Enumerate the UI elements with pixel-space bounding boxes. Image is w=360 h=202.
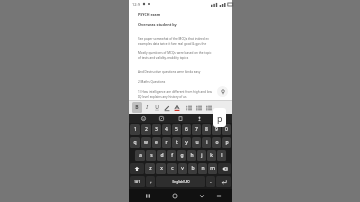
button[interactable]: 5: [172, 124, 181, 135]
staticText: Mostly questions of MCQs were based on t…: [138, 51, 225, 55]
button[interactable]: i: [202, 137, 211, 148]
button[interactable]: Recents: [142, 189, 154, 202]
staticText: c: [171, 165, 174, 172]
staticText: d: [160, 152, 164, 159]
staticText: of tests and validity-reability topics: [138, 56, 225, 60]
staticText: p: [225, 139, 229, 146]
button[interactable]: ,: [146, 176, 155, 187]
button[interactable]: 6: [182, 124, 191, 135]
button[interactable]: Backspace: [218, 163, 231, 174]
button[interactable]: 0: [222, 124, 231, 135]
staticText: 9: [215, 126, 218, 133]
button[interactable]: Back: [196, 189, 208, 202]
button[interactable]: Enter: [216, 176, 231, 187]
staticText: .: [210, 178, 212, 185]
staticText: z: [149, 165, 152, 172]
button[interactable]: Highlight: [162, 102, 172, 113]
staticText: b: [191, 165, 195, 172]
button[interactable]: B: [132, 102, 142, 113]
staticText: j: [201, 152, 203, 159]
button[interactable]: 3: [152, 124, 161, 135]
button[interactable]: 2: [141, 124, 151, 135]
staticText: See paper somewhat of the MCQs that inde…: [138, 37, 225, 41]
button[interactable]: z: [145, 163, 155, 174]
staticText: q: [133, 139, 137, 146]
button[interactable]: 8: [202, 124, 211, 135]
staticText: r: [165, 139, 168, 146]
staticText: 5: [175, 126, 178, 133]
button[interactable]: s: [146, 150, 156, 161]
button[interactable]: Stickers: [157, 114, 166, 123]
button[interactable]: Voice input: [195, 114, 204, 123]
button[interactable]: Numbered list: [194, 102, 204, 113]
button[interactable]: g: [177, 150, 186, 161]
button[interactable]: h: [187, 150, 196, 161]
button[interactable]: 7: [192, 124, 201, 135]
button[interactable]: English(UK): [156, 176, 205, 187]
button[interactable]: Edit note: [217, 86, 228, 97]
button[interactable]: k: [207, 150, 216, 161]
button[interactable]: y: [182, 137, 191, 148]
button[interactable]: 1: [130, 124, 140, 135]
button[interactable]: I: [142, 102, 152, 113]
staticText: k: [210, 152, 213, 159]
staticText: 3: [155, 126, 158, 133]
staticText: Overseas student by: [138, 22, 225, 27]
button[interactable]: f: [167, 150, 176, 161]
staticText: n: [201, 165, 205, 172]
staticText: ,: [150, 178, 152, 185]
staticText: examples data twice it fare real good & …: [138, 42, 225, 46]
staticText: And Destructive questions were kinda eas…: [138, 70, 225, 74]
button[interactable]: j: [197, 150, 206, 161]
button[interactable]: Indent: [204, 102, 214, 113]
staticText: U: [155, 104, 159, 111]
button[interactable]: e: [152, 137, 161, 148]
button[interactable]: U: [152, 102, 162, 113]
button[interactable]: w: [141, 137, 151, 148]
staticText: m: [210, 165, 215, 172]
button[interactable]: Emoji: [139, 114, 148, 123]
button[interactable]: p: [222, 137, 231, 148]
staticText: B: [135, 104, 139, 111]
staticText: 1) How intelligence are different from h…: [138, 90, 225, 94]
button[interactable]: Shift: [130, 163, 144, 174]
button[interactable]: u: [192, 137, 201, 148]
button[interactable]: q: [130, 137, 140, 148]
button[interactable]: x: [156, 163, 166, 174]
staticText: g: [180, 152, 184, 159]
button[interactable]: a: [135, 150, 145, 161]
staticText: 2: [145, 126, 148, 133]
staticText: t: [176, 139, 178, 146]
staticText: 7: [195, 126, 198, 133]
button[interactable]: 9: [212, 124, 221, 135]
button[interactable]: !#1: [130, 176, 145, 187]
staticText: 12:9: [132, 2, 140, 7]
staticText: 2 Maths Questions: [138, 80, 225, 84]
button[interactable]: m: [208, 163, 217, 174]
button[interactable]: c: [167, 163, 177, 174]
button[interactable]: Clipboard: [176, 114, 185, 123]
staticText: 4: [165, 126, 168, 133]
button[interactable]: b: [188, 163, 197, 174]
button[interactable]: v: [178, 163, 187, 174]
button[interactable]: Text colour: [172, 102, 182, 113]
button[interactable]: Settings: [213, 114, 222, 123]
staticText: f: [171, 152, 173, 159]
button[interactable]: n: [198, 163, 207, 174]
staticText: PSYCH exam: [138, 12, 225, 17]
button[interactable]: o: [212, 137, 221, 148]
button[interactable]: 4: [162, 124, 171, 135]
button[interactable]: Home: [169, 189, 181, 202]
staticText: 8: [205, 126, 208, 133]
button[interactable]: r: [162, 137, 171, 148]
button[interactable]: Bulleted list: [184, 102, 194, 113]
staticText: l: [221, 152, 223, 159]
button[interactable]: l: [217, 150, 226, 161]
staticText: v: [181, 165, 184, 172]
staticText: h: [190, 152, 194, 159]
button[interactable]: d: [157, 150, 166, 161]
button[interactable]: t: [172, 137, 181, 148]
button[interactable]: Hide keyboard: [213, 189, 225, 202]
staticText: p: [217, 112, 223, 124]
button[interactable]: .: [206, 176, 215, 187]
